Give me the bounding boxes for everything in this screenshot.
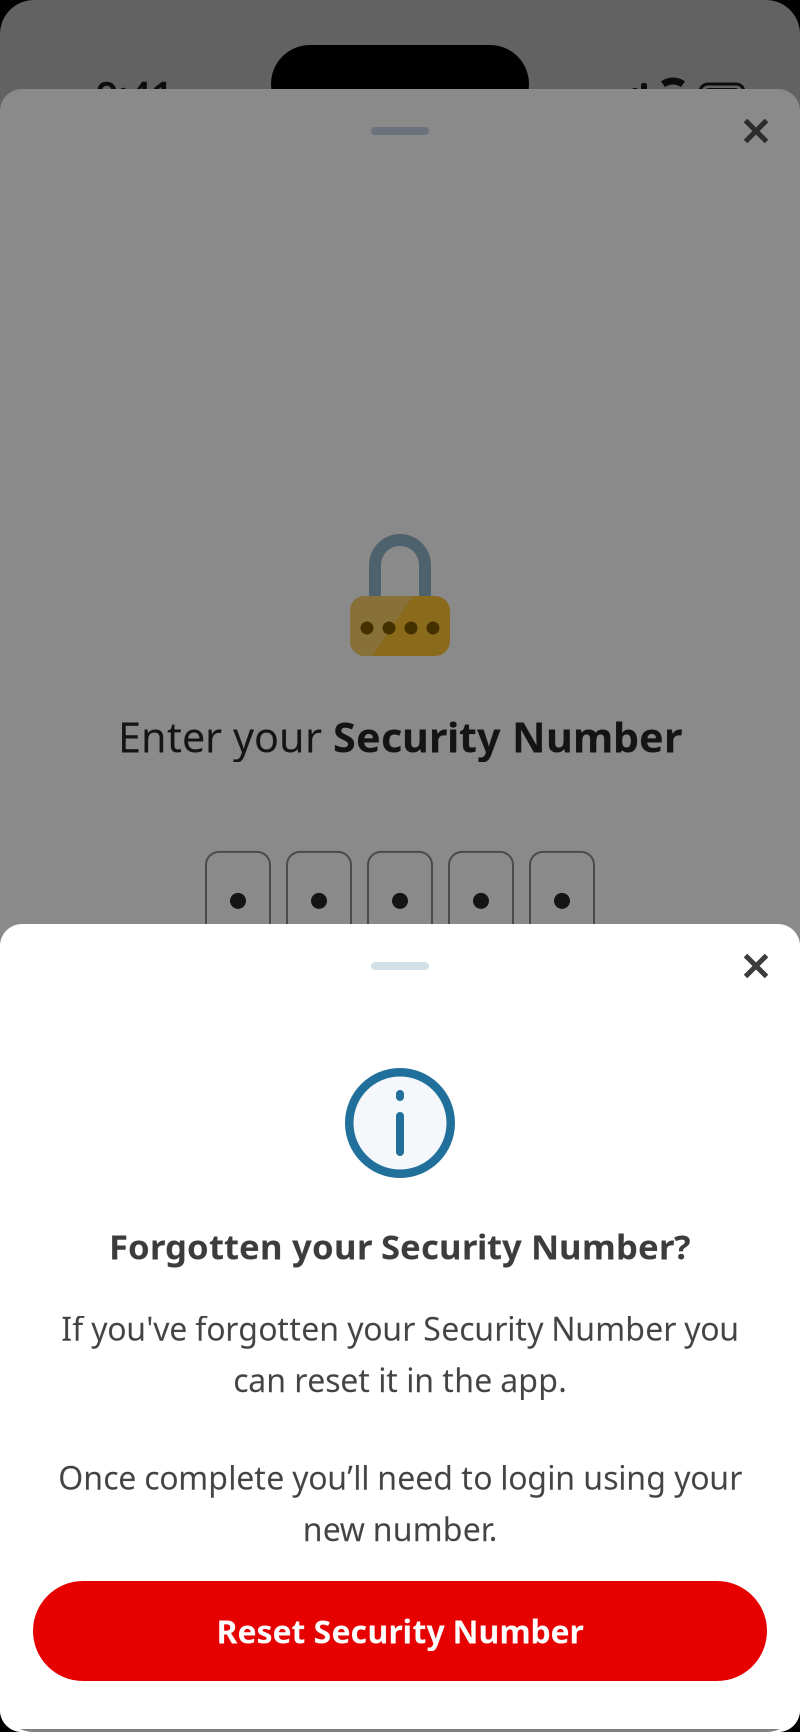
- staticText: Reset Security Number: [216, 1610, 583, 1652]
- staticText: Once complete you’ll need to login using…: [58, 1456, 742, 1550]
- button[interactable]: Close: [725, 935, 787, 997]
- staticText: Enter your Security Number: [118, 709, 682, 764]
- staticText: 9:41: [96, 68, 173, 119]
- button[interactable]: Close: [725, 100, 787, 162]
- button[interactable]: Reset Security Number: [33, 1581, 767, 1681]
- staticText: Forgotten your Security Number?: [109, 1223, 691, 1269]
- staticText: If you've forgotten your Security Number…: [61, 1307, 739, 1401]
